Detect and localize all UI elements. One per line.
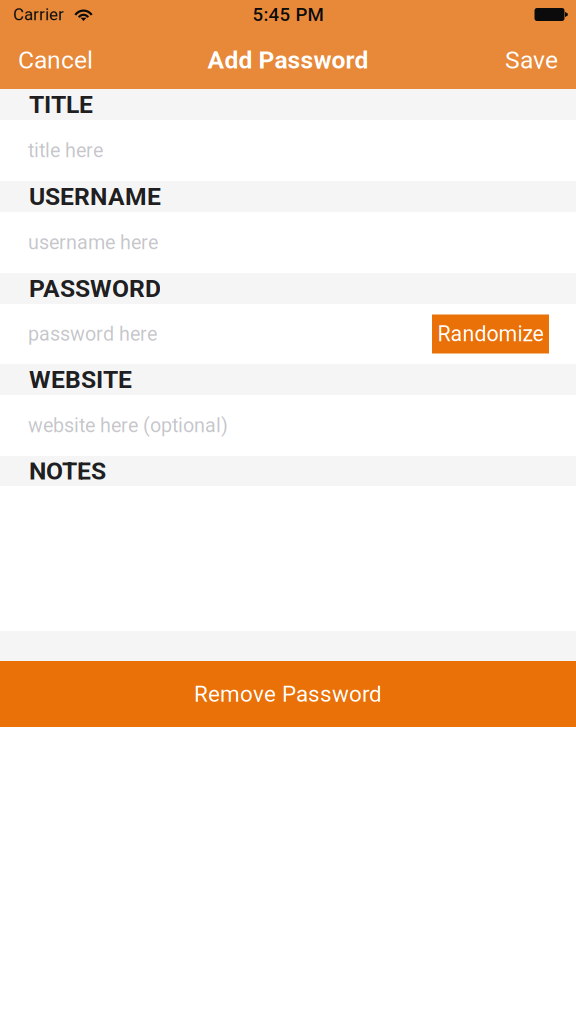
staticText: PASSWORD (29, 274, 161, 303)
button[interactable]: Randomize (432, 314, 549, 353)
staticText: Add Password (207, 45, 368, 74)
staticText: 5:45 PM (252, 4, 323, 25)
staticText: username here (28, 231, 158, 254)
button[interactable]: Save (487, 40, 576, 80)
button[interactable]: website here (optional) (0, 395, 549, 456)
staticText: USERNAME (29, 182, 161, 211)
button[interactable]: title here (0, 120, 549, 181)
button[interactable]: username here (0, 212, 549, 273)
button[interactable]: password here (0, 304, 432, 364)
staticText: WEBSITE (29, 365, 132, 394)
staticText: Save (505, 45, 558, 74)
staticText: NOTES (29, 456, 106, 485)
staticText: website here (optional) (28, 414, 228, 437)
staticText: Remove Password (194, 681, 382, 707)
button[interactable]: Cancel (0, 40, 111, 80)
staticText: password here (28, 322, 157, 345)
staticText: title here (28, 139, 103, 162)
staticText: TITLE (29, 90, 93, 119)
staticText: Carrier (13, 5, 64, 24)
button[interactable]: Remove Password (0, 661, 576, 727)
staticText: Randomize (437, 321, 543, 346)
staticText: Cancel (18, 45, 93, 74)
